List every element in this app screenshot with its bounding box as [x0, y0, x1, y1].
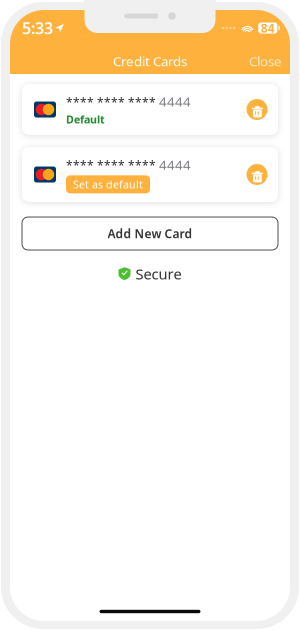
button[interactable]: Delete card	[245, 162, 269, 186]
staticText: Add New Card	[107, 225, 192, 241]
button[interactable]: Delete card	[245, 97, 269, 121]
staticText: Secure	[135, 264, 181, 283]
staticText: 4444	[159, 156, 191, 173]
staticText: 5:33	[22, 17, 53, 39]
staticText: **** **** ****	[66, 157, 156, 173]
staticText: Close	[249, 52, 282, 70]
staticText: 4444	[159, 93, 191, 110]
button[interactable]: Close	[241, 47, 290, 75]
staticText: Default	[66, 112, 105, 126]
staticText: Credit Cards	[113, 52, 187, 70]
staticText: **** **** ****	[66, 94, 156, 110]
button[interactable]: Set as default	[66, 175, 150, 193]
button[interactable]: Add New Card	[22, 217, 278, 250]
staticText: 84	[261, 20, 275, 36]
staticText: Set as default	[73, 177, 143, 191]
